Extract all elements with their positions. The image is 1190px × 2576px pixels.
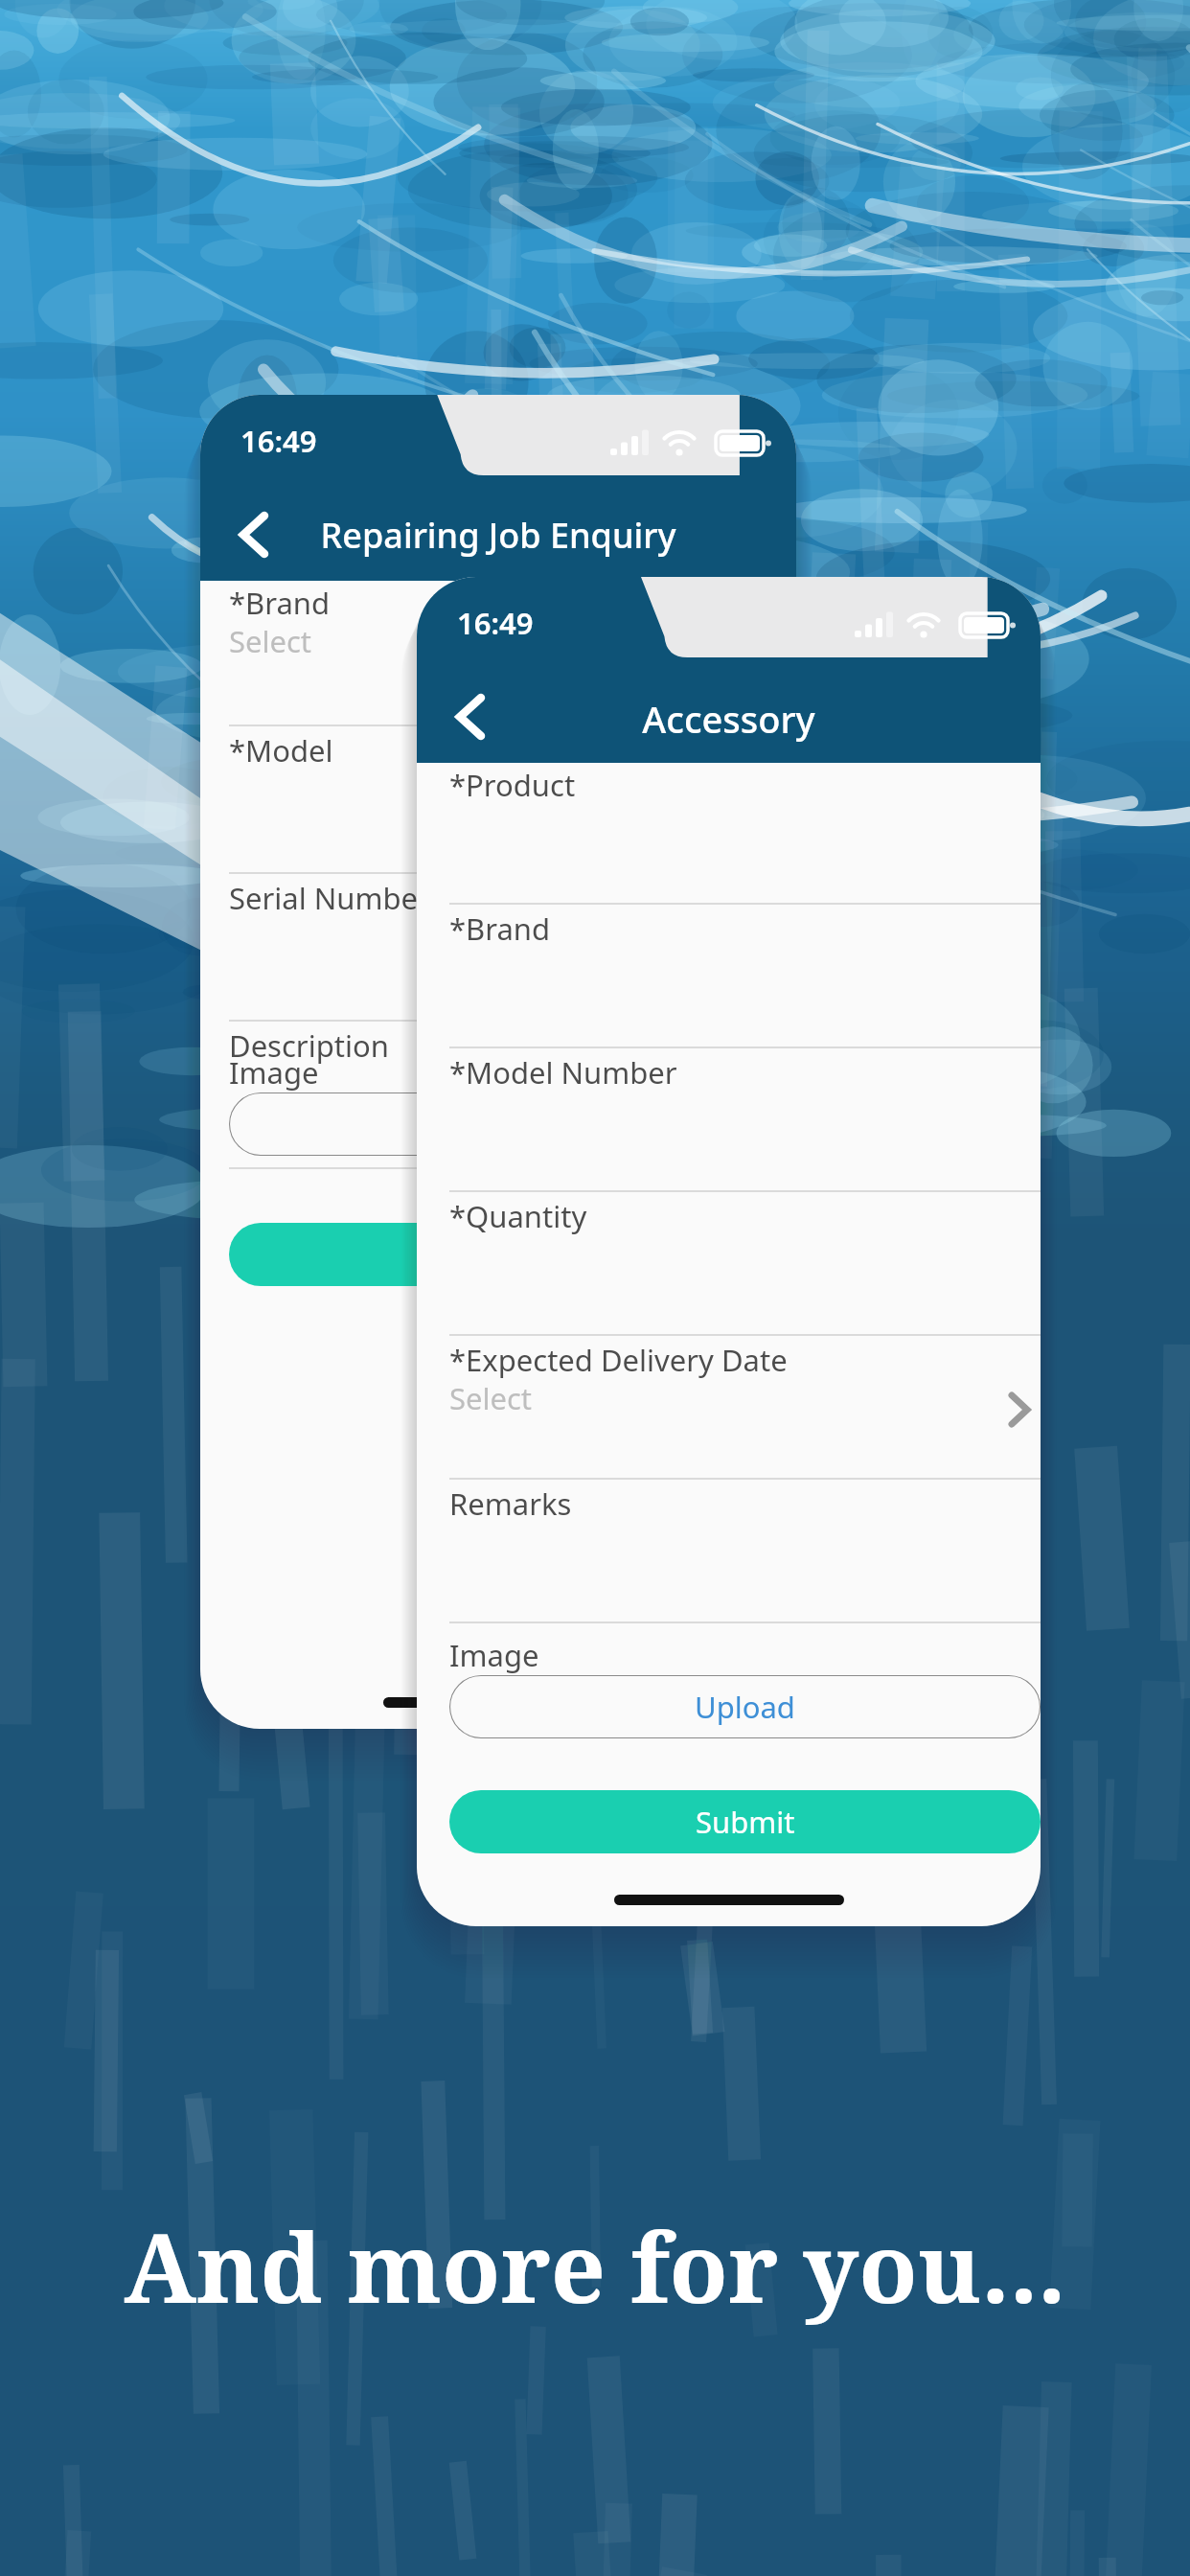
staticText: *Brand — [229, 583, 331, 623]
staticText: Description — [229, 1025, 389, 1066]
button[interactable]: Serial Number — [229, 878, 796, 1022]
button[interactable]: *Model Number — [449, 1052, 1041, 1192]
button[interactable]: Remarks — [449, 1483, 1041, 1623]
staticText: Image — [449, 1635, 539, 1675]
staticText: Upload — [695, 1687, 795, 1727]
staticText: Select — [449, 1378, 533, 1418]
button[interactable]: Submit — [449, 1790, 1041, 1853]
staticText: *Brand — [449, 908, 551, 949]
staticText: 16:49 — [240, 421, 317, 461]
staticText: Serial Number — [229, 878, 430, 918]
staticText: *Model Number — [449, 1052, 677, 1092]
staticText: 16:49 — [457, 603, 534, 643]
button[interactable]: Description — [229, 1025, 796, 1169]
button[interactable]: *Brand — [449, 908, 1041, 1048]
staticText: *Expected Delivery Date — [449, 1340, 788, 1380]
button[interactable]: Submit — [229, 1223, 796, 1286]
button[interactable]: Back — [219, 500, 288, 569]
staticText: Repairing Job Enquiry — [200, 512, 796, 559]
button[interactable]: *Model — [229, 730, 796, 874]
button[interactable]: *Product — [449, 765, 1041, 905]
staticText: Remarks — [449, 1483, 572, 1524]
button[interactable]: *Quantity — [449, 1196, 1041, 1336]
button[interactable]: *Expected Delivery Date — [449, 1340, 1041, 1480]
staticText: Select — [229, 621, 312, 661]
button[interactable]: Upload — [449, 1675, 1041, 1738]
staticText: Accessory — [417, 694, 1041, 744]
staticText: *Product — [449, 765, 576, 805]
button[interactable]: *Brand — [229, 583, 796, 726]
button[interactable]: Upload — [229, 1092, 796, 1156]
staticText: Submit — [696, 1802, 795, 1842]
button[interactable]: Back — [436, 682, 505, 751]
staticText: And more for you... — [0, 2200, 1190, 2331]
staticText: *Quantity — [449, 1196, 587, 1236]
staticText: Image — [229, 1052, 319, 1092]
staticText: *Model — [229, 730, 333, 770]
